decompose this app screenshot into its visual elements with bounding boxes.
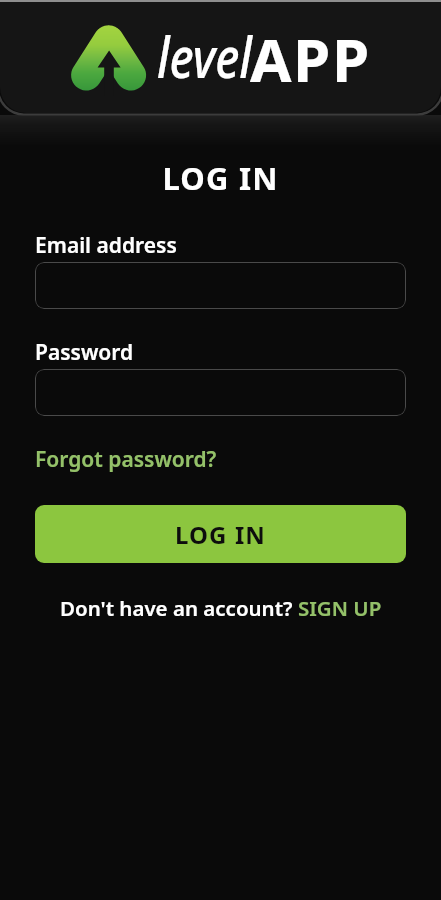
staticText: Password xyxy=(35,338,134,367)
button[interactable]: SIGN UP xyxy=(298,594,382,622)
button[interactable]: Email address input xyxy=(35,262,406,309)
button[interactable]: LOG IN xyxy=(35,505,406,563)
button[interactable]: Password input xyxy=(35,369,406,416)
staticText: level xyxy=(157,18,252,94)
staticText: LOG IN xyxy=(0,157,441,199)
staticText: Email address xyxy=(35,231,177,260)
staticText: LOG IN xyxy=(175,518,266,551)
staticText: Don't have an account? xyxy=(60,594,298,622)
staticText: APP xyxy=(250,18,371,100)
staticText: SIGN UP xyxy=(298,594,382,622)
staticText: Forgot password? xyxy=(35,445,217,474)
button[interactable]: Forgot password? xyxy=(35,444,217,475)
